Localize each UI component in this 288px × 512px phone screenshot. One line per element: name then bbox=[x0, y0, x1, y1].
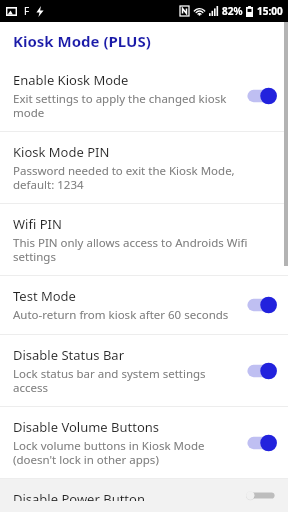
staticText: Auto-return from kiosk after 60 seconds bbox=[13, 307, 229, 323]
button[interactable]: Disable Status Bar bbox=[0, 335, 288, 406]
button[interactable]: Disable Volume Buttons bbox=[0, 407, 288, 478]
staticText: Exit settings to apply the changed kiosk… bbox=[13, 91, 238, 120]
button[interactable]: Wifi PIN bbox=[0, 204, 288, 275]
button[interactable]: Toggle on bbox=[244, 360, 278, 382]
staticText: Disable Status Bar bbox=[13, 346, 124, 364]
button[interactable]: Disable Power Button bbox=[0, 479, 288, 512]
staticText: Kiosk Mode PIN bbox=[13, 143, 110, 161]
staticText: 82% bbox=[222, 4, 243, 18]
staticText: Test Mode bbox=[13, 287, 76, 305]
staticText: Enable Kiosk Mode bbox=[13, 71, 129, 89]
button[interactable]: Toggle on bbox=[244, 432, 278, 454]
button[interactable]: Kiosk Mode PIN bbox=[0, 132, 288, 203]
button[interactable]: Test Mode bbox=[0, 276, 288, 334]
staticText: 15:00 bbox=[257, 4, 283, 18]
staticText: Kiosk Mode (PLUS) bbox=[13, 31, 151, 51]
staticText: Lock volume buttons in Kiosk Mode (doesn… bbox=[13, 438, 238, 467]
staticText: Lock status bar and system settings acce… bbox=[13, 366, 238, 395]
button[interactable]: Toggle on bbox=[244, 294, 278, 316]
staticText: Password needed to exit the Kiosk Mode, … bbox=[13, 163, 272, 192]
button[interactable]: Enable Kiosk Mode bbox=[0, 60, 288, 131]
staticText: Disable Power Button bbox=[13, 490, 145, 501]
staticText: F bbox=[24, 4, 30, 18]
staticText: Disable Volume Buttons bbox=[13, 418, 160, 436]
staticText: This PIN only allows access to Androids … bbox=[13, 235, 272, 264]
staticText: Wifi PIN bbox=[13, 215, 62, 233]
button[interactable]: Toggle on bbox=[244, 85, 278, 107]
button[interactable]: Toggle off bbox=[244, 490, 278, 501]
